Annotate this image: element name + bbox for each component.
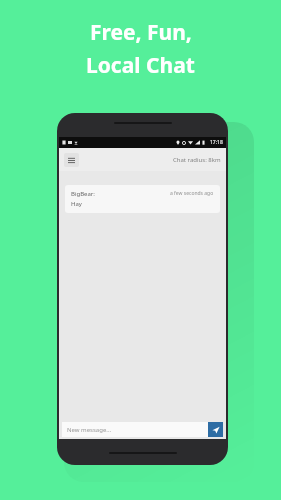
staticText: Free, Fun,	[90, 18, 192, 47]
button[interactable]: BigBear:	[65, 185, 220, 213]
staticText: Chat radius: 8km	[173, 156, 221, 164]
staticText: BigBear:	[71, 190, 95, 198]
staticText: Hay	[71, 200, 82, 208]
staticText: Local Chat	[86, 51, 195, 80]
staticText: 17:18	[210, 139, 223, 146]
staticText: New message...	[67, 426, 112, 434]
button[interactable]: Send	[208, 422, 223, 437]
staticText: a few seconds ago	[170, 190, 214, 197]
button[interactable]: New message...	[62, 422, 208, 437]
button[interactable]: Menu	[64, 153, 79, 167]
